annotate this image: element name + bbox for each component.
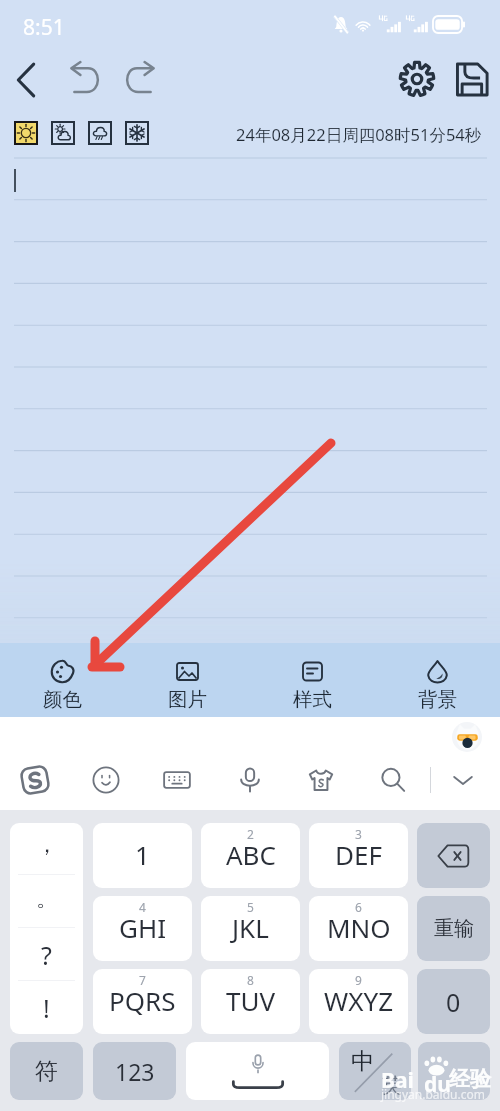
staticText: 中: [351, 1047, 374, 1076]
staticText: 颜色: [43, 687, 82, 712]
staticText: ，: [36, 831, 58, 859]
staticText: DEF: [335, 837, 382, 872]
button[interactable]: 9: [309, 969, 408, 1034]
staticText: GHI: [119, 910, 167, 945]
button[interactable]: Search: [371, 758, 415, 802]
staticText: PQRS: [109, 983, 176, 1018]
staticText: 符: [35, 1057, 58, 1086]
staticText: 2: [247, 826, 254, 842]
staticText: JKL: [232, 910, 269, 945]
staticText: 4: [139, 899, 146, 915]
button[interactable]: 1: [93, 823, 192, 888]
staticText: 0: [446, 985, 461, 1019]
button[interactable]: 重输: [417, 896, 490, 961]
staticText: 背景: [418, 687, 457, 712]
staticText: WXYZ: [324, 983, 394, 1018]
button[interactable]: [418, 1042, 490, 1100]
button[interactable]: 5: [201, 896, 300, 961]
button[interactable]: Undo: [61, 55, 109, 103]
button[interactable]: 符: [10, 1042, 83, 1100]
button[interactable]: ，: [10, 823, 83, 875]
button[interactable]: Skin: [299, 758, 343, 802]
button[interactable]: 6: [309, 896, 408, 961]
button[interactable]: Save: [447, 55, 495, 103]
staticText: 。: [36, 885, 58, 913]
button[interactable]: Keyboard layout: [155, 758, 199, 802]
staticText: Bai: [381, 1066, 414, 1095]
button[interactable]: Emoji: [84, 758, 128, 802]
staticText: ABC: [226, 837, 276, 872]
button[interactable]: Voice input: [228, 758, 272, 802]
staticText: 重输: [434, 916, 474, 941]
button[interactable]: 颜色: [0, 643, 125, 717]
button[interactable]: Weather: [125, 121, 149, 145]
staticText: 9: [355, 972, 362, 988]
button[interactable]: [186, 1042, 329, 1100]
button[interactable]: ?: [10, 928, 83, 981]
button[interactable]: 3: [309, 823, 408, 888]
button[interactable]: 图片: [125, 643, 250, 717]
staticText: MNO: [327, 910, 391, 945]
staticText: 8:51: [23, 13, 65, 42]
button[interactable]: 8: [201, 969, 300, 1034]
staticText: !: [43, 991, 50, 1025]
button[interactable]: 4: [93, 896, 192, 961]
button[interactable]: 0: [417, 969, 490, 1034]
staticText: ?: [41, 938, 52, 972]
button[interactable]: Weather: [88, 121, 112, 145]
staticText: 6: [355, 899, 362, 915]
button[interactable]: Hide keyboard: [441, 758, 485, 802]
staticText: 样式: [293, 687, 332, 712]
staticText: 1: [135, 837, 150, 872]
staticText: 24年08月22日周四08时51分54秒: [236, 123, 482, 146]
staticText: TUV: [226, 983, 276, 1018]
button[interactable]: 7: [93, 969, 192, 1034]
staticText: 3: [355, 826, 362, 842]
staticText: 英: [382, 1073, 402, 1098]
button[interactable]: Redo: [116, 55, 164, 103]
button[interactable]: Sogou: [13, 758, 57, 802]
button[interactable]: 中: [339, 1042, 411, 1100]
staticText: du: [424, 1070, 451, 1099]
staticText: 123: [115, 1056, 155, 1087]
button[interactable]: Settings: [393, 55, 441, 103]
staticText: 7: [139, 972, 146, 988]
button[interactable]: 背景: [375, 643, 500, 717]
staticText: jingyan.baidu.com: [381, 1086, 485, 1102]
button[interactable]: !: [10, 981, 83, 1034]
button[interactable]: 样式: [250, 643, 375, 717]
button[interactable]: Weather: [51, 121, 75, 145]
staticText: 8: [247, 972, 254, 988]
staticText: 经验: [449, 1066, 491, 1092]
button[interactable]: 123: [93, 1042, 176, 1100]
button[interactable]: Back: [2, 56, 50, 104]
button[interactable]: Weather: [14, 121, 38, 145]
button[interactable]: 。: [10, 875, 83, 928]
staticText: 5: [247, 899, 254, 915]
button[interactable]: [417, 823, 490, 888]
button[interactable]: 2: [201, 823, 300, 888]
button[interactable]: Account: [452, 722, 482, 752]
staticText: 图片: [168, 687, 207, 712]
